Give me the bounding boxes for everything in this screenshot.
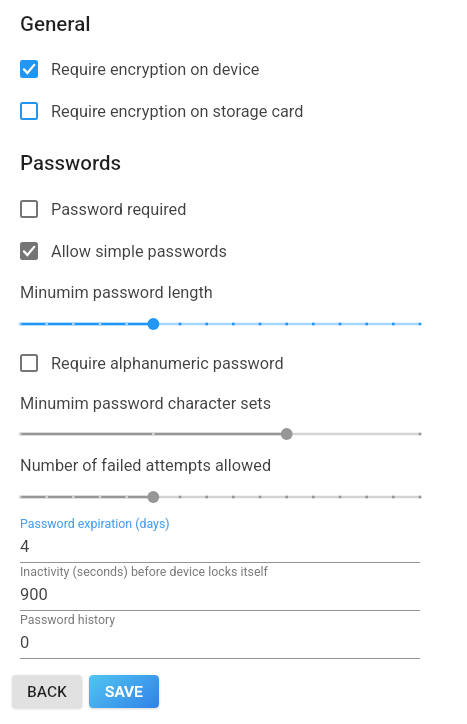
staticText: 4 <box>20 537 30 556</box>
button[interactable] <box>0 313 467 335</box>
staticText: Number of failed attempts allowed <box>20 456 272 475</box>
button[interactable]: Require encryption on storage card <box>20 102 304 120</box>
button[interactable] <box>0 486 467 508</box>
staticText: Minumim password character sets <box>20 394 272 413</box>
button[interactable]: BACK <box>12 675 82 708</box>
staticText: Password history <box>20 612 116 627</box>
staticText: SAVE <box>105 683 143 701</box>
staticText: 0 <box>20 633 30 652</box>
button[interactable] <box>0 423 467 445</box>
staticText: Password required <box>51 200 187 218</box>
staticText: Password expiration (days) <box>20 516 170 531</box>
staticText: Require encryption on storage card <box>51 102 304 120</box>
staticText: 900 <box>20 585 48 604</box>
staticText: Require alphanumeric password <box>51 354 284 372</box>
button[interactable]: SAVE <box>89 675 159 708</box>
staticText: Allow simple passwords <box>51 242 227 260</box>
staticText: Require encryption on device <box>51 60 260 78</box>
staticText: Inactivity (seconds) before device locks… <box>20 564 268 579</box>
staticText: General <box>20 12 91 36</box>
button[interactable]: Password required <box>20 200 187 218</box>
staticText: Minumim password length <box>20 283 213 302</box>
button[interactable]: Allow simple passwords <box>20 242 227 260</box>
button[interactable]: Require encryption on device <box>20 60 260 78</box>
button[interactable]: Require alphanumeric password <box>20 354 284 372</box>
staticText: BACK <box>27 683 67 701</box>
staticText: Passwords <box>20 151 122 175</box>
